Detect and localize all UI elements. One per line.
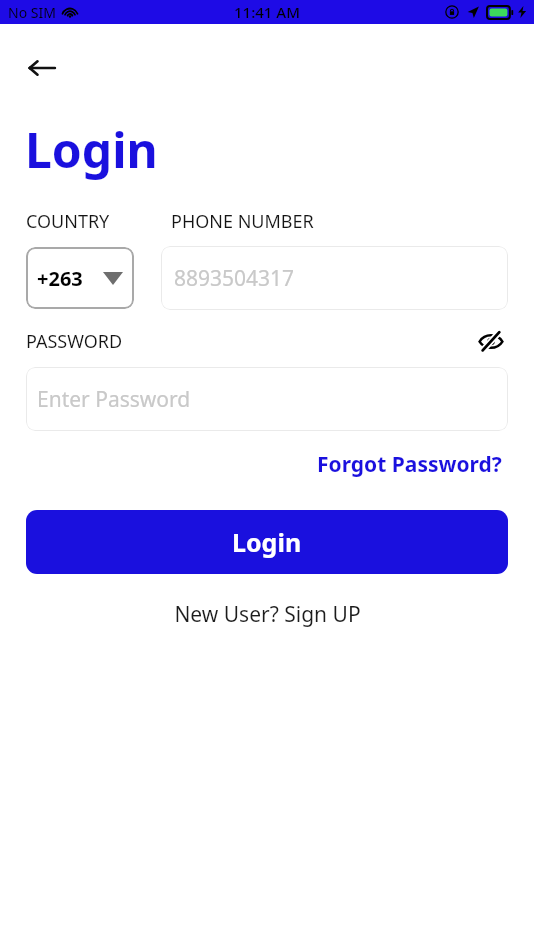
button[interactable]: Enter Password [26,367,508,431]
staticText: Login [232,525,302,559]
button[interactable]: Toggle password visibility [474,324,508,358]
staticText: 11:41 AM [234,2,300,22]
button[interactable]: 8893504317 [161,246,508,310]
staticText: No SIM [8,3,56,22]
staticText: Login [25,117,158,182]
staticText: PASSWORD [26,329,123,354]
button[interactable]: +263 [26,247,134,309]
button[interactable]: Login [26,510,508,574]
button[interactable]: Forgot Password? [313,446,506,483]
staticText: Forgot Password? [317,450,502,479]
staticText: 8893504317 [174,264,295,293]
staticText: Enter Password [37,385,191,414]
staticText: PHONE NUMBER [171,209,314,234]
staticText: New User? Sign UP [174,600,361,629]
staticText: COUNTRY [26,209,110,234]
staticText: +263 [37,265,83,292]
button[interactable]: Back [18,44,66,92]
button[interactable]: New User? Sign UP [0,600,534,629]
